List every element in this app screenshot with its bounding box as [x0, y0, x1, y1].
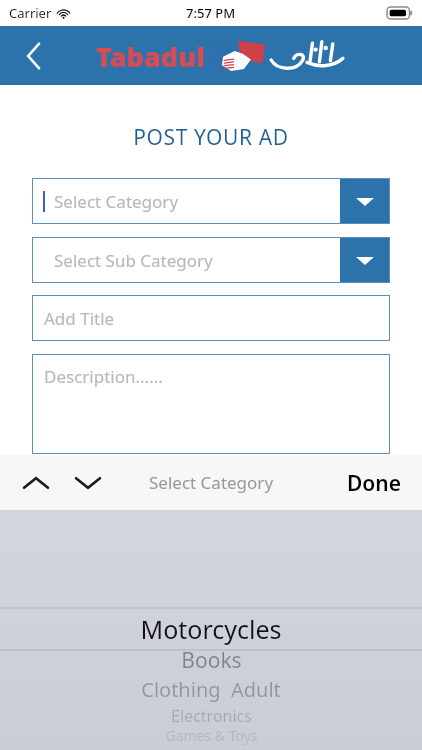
other: Tabadul logo	[96, 33, 346, 79]
staticText: Clothing Adult	[141, 676, 281, 703]
button[interactable]: Description......	[32, 354, 390, 454]
button[interactable]: Games & Toys	[0, 726, 422, 745]
button[interactable]: Next field	[62, 461, 114, 505]
staticText: Add Title	[44, 307, 115, 330]
staticText: Motorcycles	[140, 612, 282, 646]
staticText: Select Sub Category	[54, 249, 213, 272]
button[interactable]: Motorcycles	[0, 612, 422, 646]
button[interactable]: Add Title	[32, 295, 390, 341]
button[interactable]: Select Sub Category	[32, 237, 390, 283]
button[interactable]: Done	[347, 460, 402, 506]
staticText: Tabadul	[96, 38, 205, 75]
button[interactable]: Back	[12, 34, 56, 78]
staticText: Electronics	[171, 705, 252, 727]
staticText: Books	[181, 646, 242, 675]
button[interactable]: Select Category	[32, 178, 390, 224]
staticText: Select Category	[149, 471, 274, 494]
button[interactable]: Previous field	[10, 461, 62, 505]
button[interactable]: Books	[0, 646, 422, 675]
staticText: Done	[347, 469, 402, 498]
button[interactable]: Clothing Adult	[0, 676, 422, 703]
staticText: 7:57 PM	[186, 4, 236, 22]
staticText: Carrier	[9, 4, 52, 22]
staticText: POST YOUR AD	[0, 123, 422, 152]
staticText: Select Category	[54, 190, 179, 213]
staticText: Description......	[44, 365, 163, 388]
staticText: Games & Toys	[165, 726, 258, 745]
button[interactable]: Electronics	[0, 705, 422, 727]
